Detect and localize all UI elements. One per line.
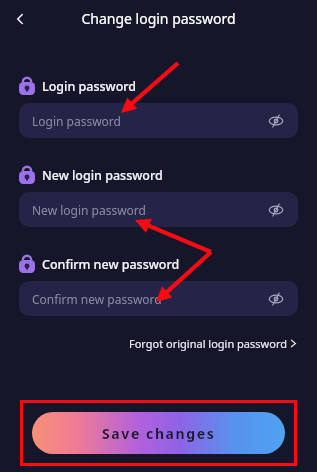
staticText: Change login password [81,9,236,28]
staticText: Login password [32,113,266,129]
button[interactable]: Login password [19,103,298,138]
button[interactable]: Back [6,5,34,33]
staticText: Confirm new password [32,291,266,307]
staticText: Forgot original login password [129,336,287,351]
button[interactable]: Show password [266,289,286,309]
staticText: Save changes [102,424,216,443]
button[interactable]: Show password [266,200,286,220]
button[interactable]: Save changes [32,412,285,454]
staticText: Login password [42,78,137,95]
staticText: New login password [42,167,163,184]
staticText: Confirm new password [42,256,180,273]
button[interactable]: Confirm new password [19,281,298,316]
button[interactable]: Show password [266,111,286,131]
staticText: New login password [32,202,266,218]
button[interactable]: Forgot original login password [125,332,301,355]
button[interactable]: New login password [19,192,298,227]
